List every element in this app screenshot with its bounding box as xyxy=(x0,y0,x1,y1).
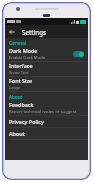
button[interactable]: About xyxy=(5,128,88,139)
staticText: Report technical issues or suggest new f… xyxy=(9,109,84,115)
staticText: Enable Dark Mode xyxy=(9,55,46,61)
button[interactable]: Feedback xyxy=(5,101,88,115)
staticText: Font Size xyxy=(9,77,33,84)
staticText: Settings xyxy=(22,28,47,36)
staticText: Show Text xyxy=(9,70,29,76)
button[interactable]: Dark Mode xyxy=(5,47,88,61)
button[interactable]: Interface xyxy=(5,62,88,76)
staticText: Dark Mode xyxy=(9,47,38,54)
staticText: Feedback xyxy=(9,101,34,108)
staticText: General xyxy=(9,40,27,46)
button[interactable]: Font Size xyxy=(5,77,88,91)
staticText: About xyxy=(9,130,25,137)
staticText: Privacy Policy xyxy=(9,118,44,125)
button[interactable]: Privacy Policy xyxy=(5,116,88,127)
button[interactable]: Back xyxy=(7,27,17,37)
staticText: Interface xyxy=(9,62,33,69)
staticText: About xyxy=(9,94,23,100)
button[interactable]: Dark Mode toggle xyxy=(73,51,84,57)
staticText: Large xyxy=(9,85,21,91)
